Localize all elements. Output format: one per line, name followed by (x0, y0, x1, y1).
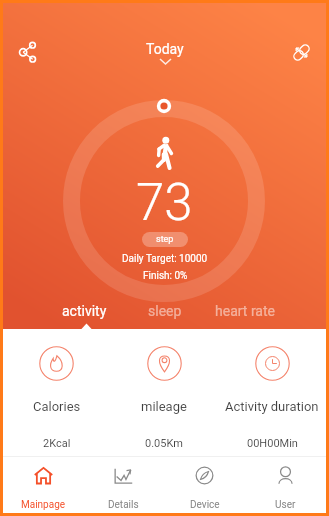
staticText: Calories (33, 399, 81, 414)
button[interactable]: Today (53, 22, 276, 82)
staticText: heart rate (215, 303, 275, 319)
staticText: Finish: 0% (143, 270, 188, 282)
button[interactable]: Share (3, 27, 53, 77)
button[interactable]: Details (83, 457, 164, 513)
staticText: mileage (141, 399, 187, 414)
staticText: activity (62, 303, 107, 319)
staticText: sleep (148, 303, 182, 319)
staticText: Today (146, 41, 184, 57)
button[interactable]: Device (164, 457, 245, 513)
staticText: 2Kcal (43, 437, 71, 450)
button[interactable]: Calories (3, 346, 110, 450)
button[interactable]: activity (44, 300, 125, 322)
button[interactable]: Mainpage (3, 457, 83, 513)
button[interactable]: heart rate (205, 300, 285, 322)
staticText: Details (108, 499, 139, 511)
staticText: Daily Target: 10000 (122, 253, 208, 265)
staticText: step (156, 234, 174, 245)
button[interactable]: mileage (110, 346, 218, 450)
button[interactable]: Link device (276, 27, 326, 77)
staticText: User (275, 499, 296, 511)
button[interactable]: User (245, 457, 326, 513)
staticText: Activity duration (225, 399, 319, 414)
staticText: Mainpage (21, 499, 66, 511)
staticText: Device (190, 499, 220, 511)
staticText: 0.05Km (145, 437, 183, 450)
button[interactable]: sleep (125, 300, 205, 322)
staticText: 73 (136, 173, 193, 233)
staticText: 00H00Min (247, 437, 298, 450)
button[interactable]: Activity duration (218, 346, 326, 450)
